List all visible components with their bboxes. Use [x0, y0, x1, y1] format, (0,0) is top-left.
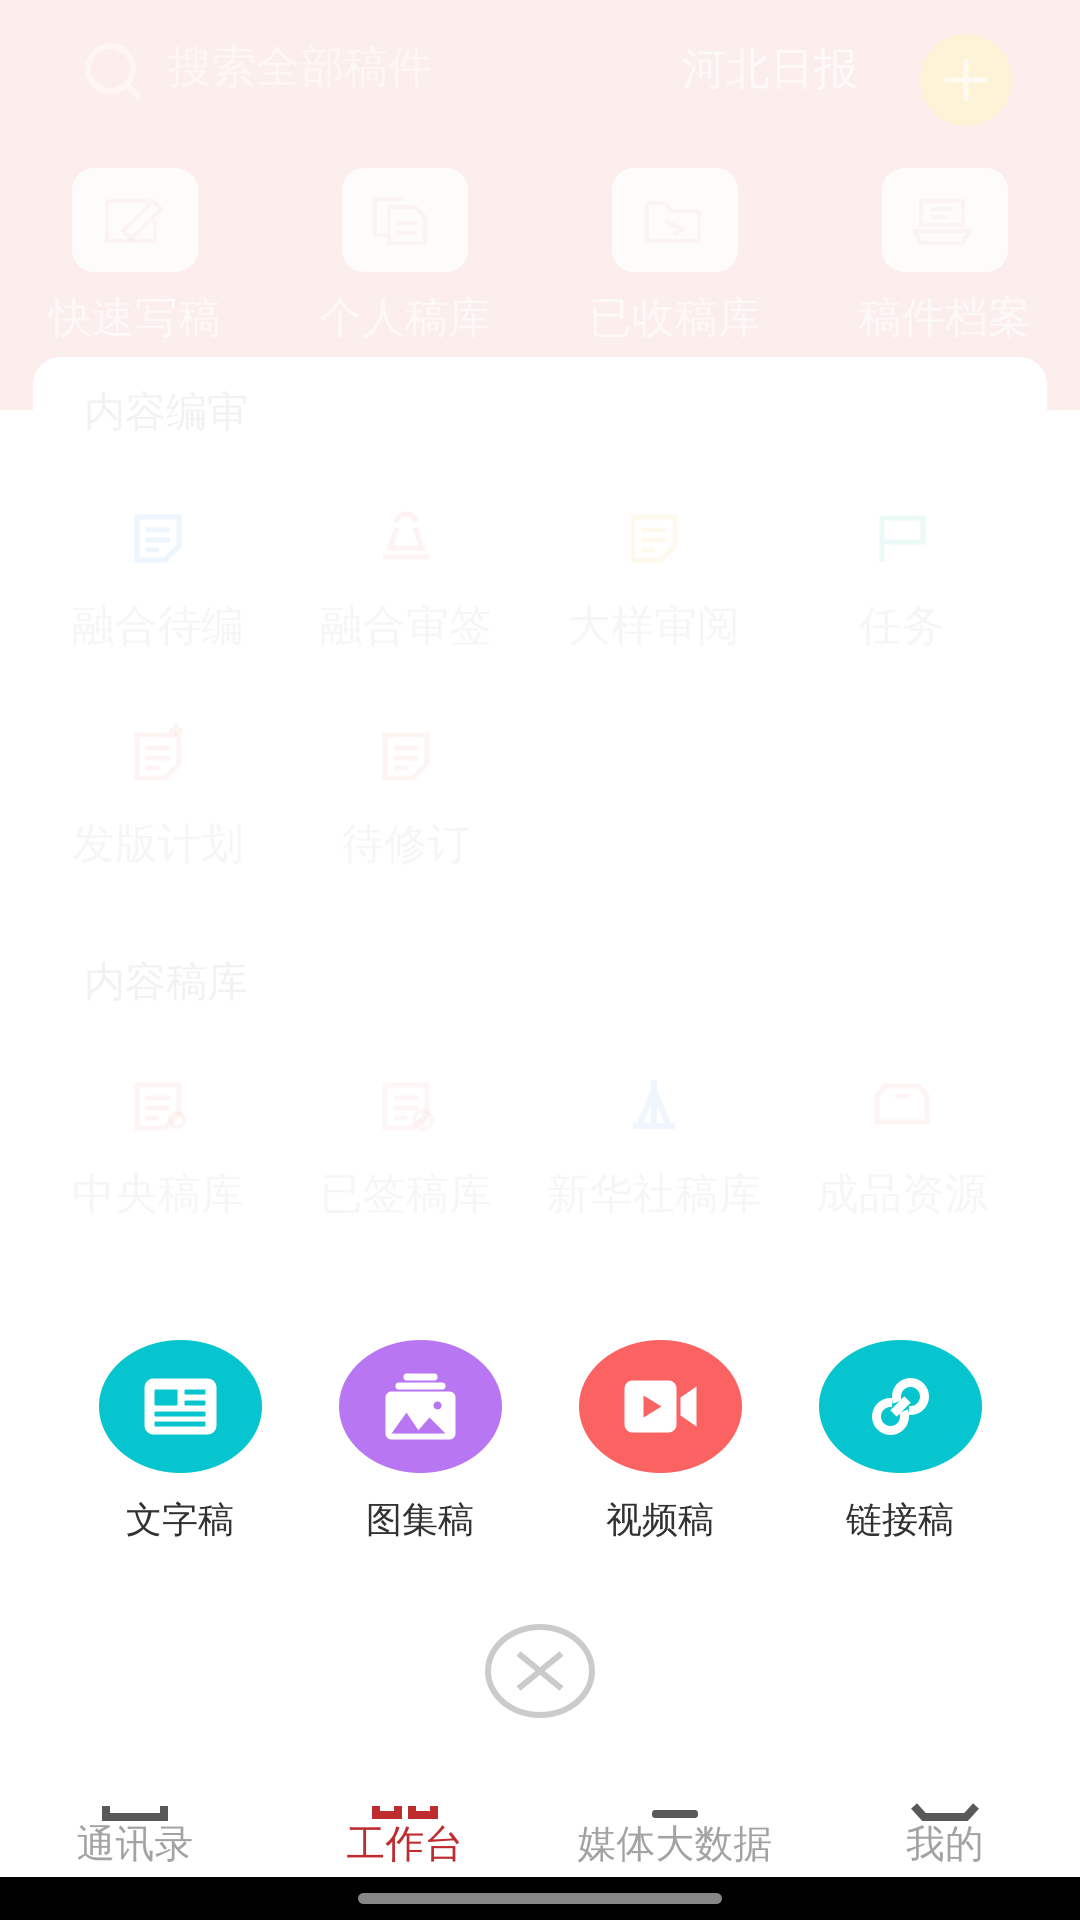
staticText: 个人稿库	[319, 292, 491, 344]
button[interactable]: 媒体大数据	[540, 1765, 810, 1877]
button[interactable]: 快速写稿	[0, 168, 270, 348]
button[interactable]: 通讯录	[0, 1765, 270, 1877]
button[interactable]: 稿件档案	[810, 168, 1080, 348]
staticText: 文字稿	[126, 1498, 234, 1542]
staticText: 链接稿	[846, 1498, 954, 1542]
staticText: 河北日报	[682, 42, 858, 96]
button[interactable]: 已收稿库	[540, 168, 810, 348]
staticText: 融合审签	[320, 600, 492, 652]
button[interactable]: 个人稿库	[270, 168, 540, 348]
staticText: 任务	[859, 600, 945, 652]
staticText: 新华社稿库	[546, 1168, 761, 1220]
staticText: 内容编审	[84, 387, 248, 437]
staticText: 发版计划	[72, 818, 244, 870]
staticText: 成品资源	[816, 1168, 988, 1220]
staticText: 图集稿	[366, 1498, 474, 1542]
staticText: 我的	[906, 1820, 984, 1868]
staticText: 中央稿库	[72, 1168, 244, 1220]
button[interactable]: 关闭	[0, 1621, 1080, 1721]
staticText: 融合待编	[72, 600, 244, 652]
staticText: 待修订	[341, 818, 470, 870]
button[interactable]: 视频稿	[540, 1340, 780, 1555]
staticText: 稿件档案	[859, 292, 1031, 344]
staticText: 视频稿	[606, 1498, 714, 1542]
staticText: 媒体大数据	[577, 1820, 772, 1868]
staticText: 大样审阅	[568, 600, 740, 652]
button[interactable]: 我的	[810, 1765, 1080, 1877]
staticText: 已收稿库	[589, 292, 761, 344]
staticText: 已签稿库	[320, 1168, 492, 1220]
staticText: 搜索全部稿件	[168, 40, 432, 94]
staticText: 工作台	[346, 1820, 463, 1868]
button[interactable]: 文字稿	[60, 1340, 300, 1555]
staticText: 快速写稿	[49, 292, 221, 344]
button[interactable]: 新建	[920, 34, 1012, 126]
staticText: 内容稿库	[84, 957, 248, 1007]
button[interactable]: 图集稿	[300, 1340, 540, 1555]
button[interactable]: 链接稿	[780, 1340, 1020, 1555]
staticText: 通讯录	[76, 1820, 193, 1868]
button[interactable]: 工作台	[270, 1765, 540, 1877]
